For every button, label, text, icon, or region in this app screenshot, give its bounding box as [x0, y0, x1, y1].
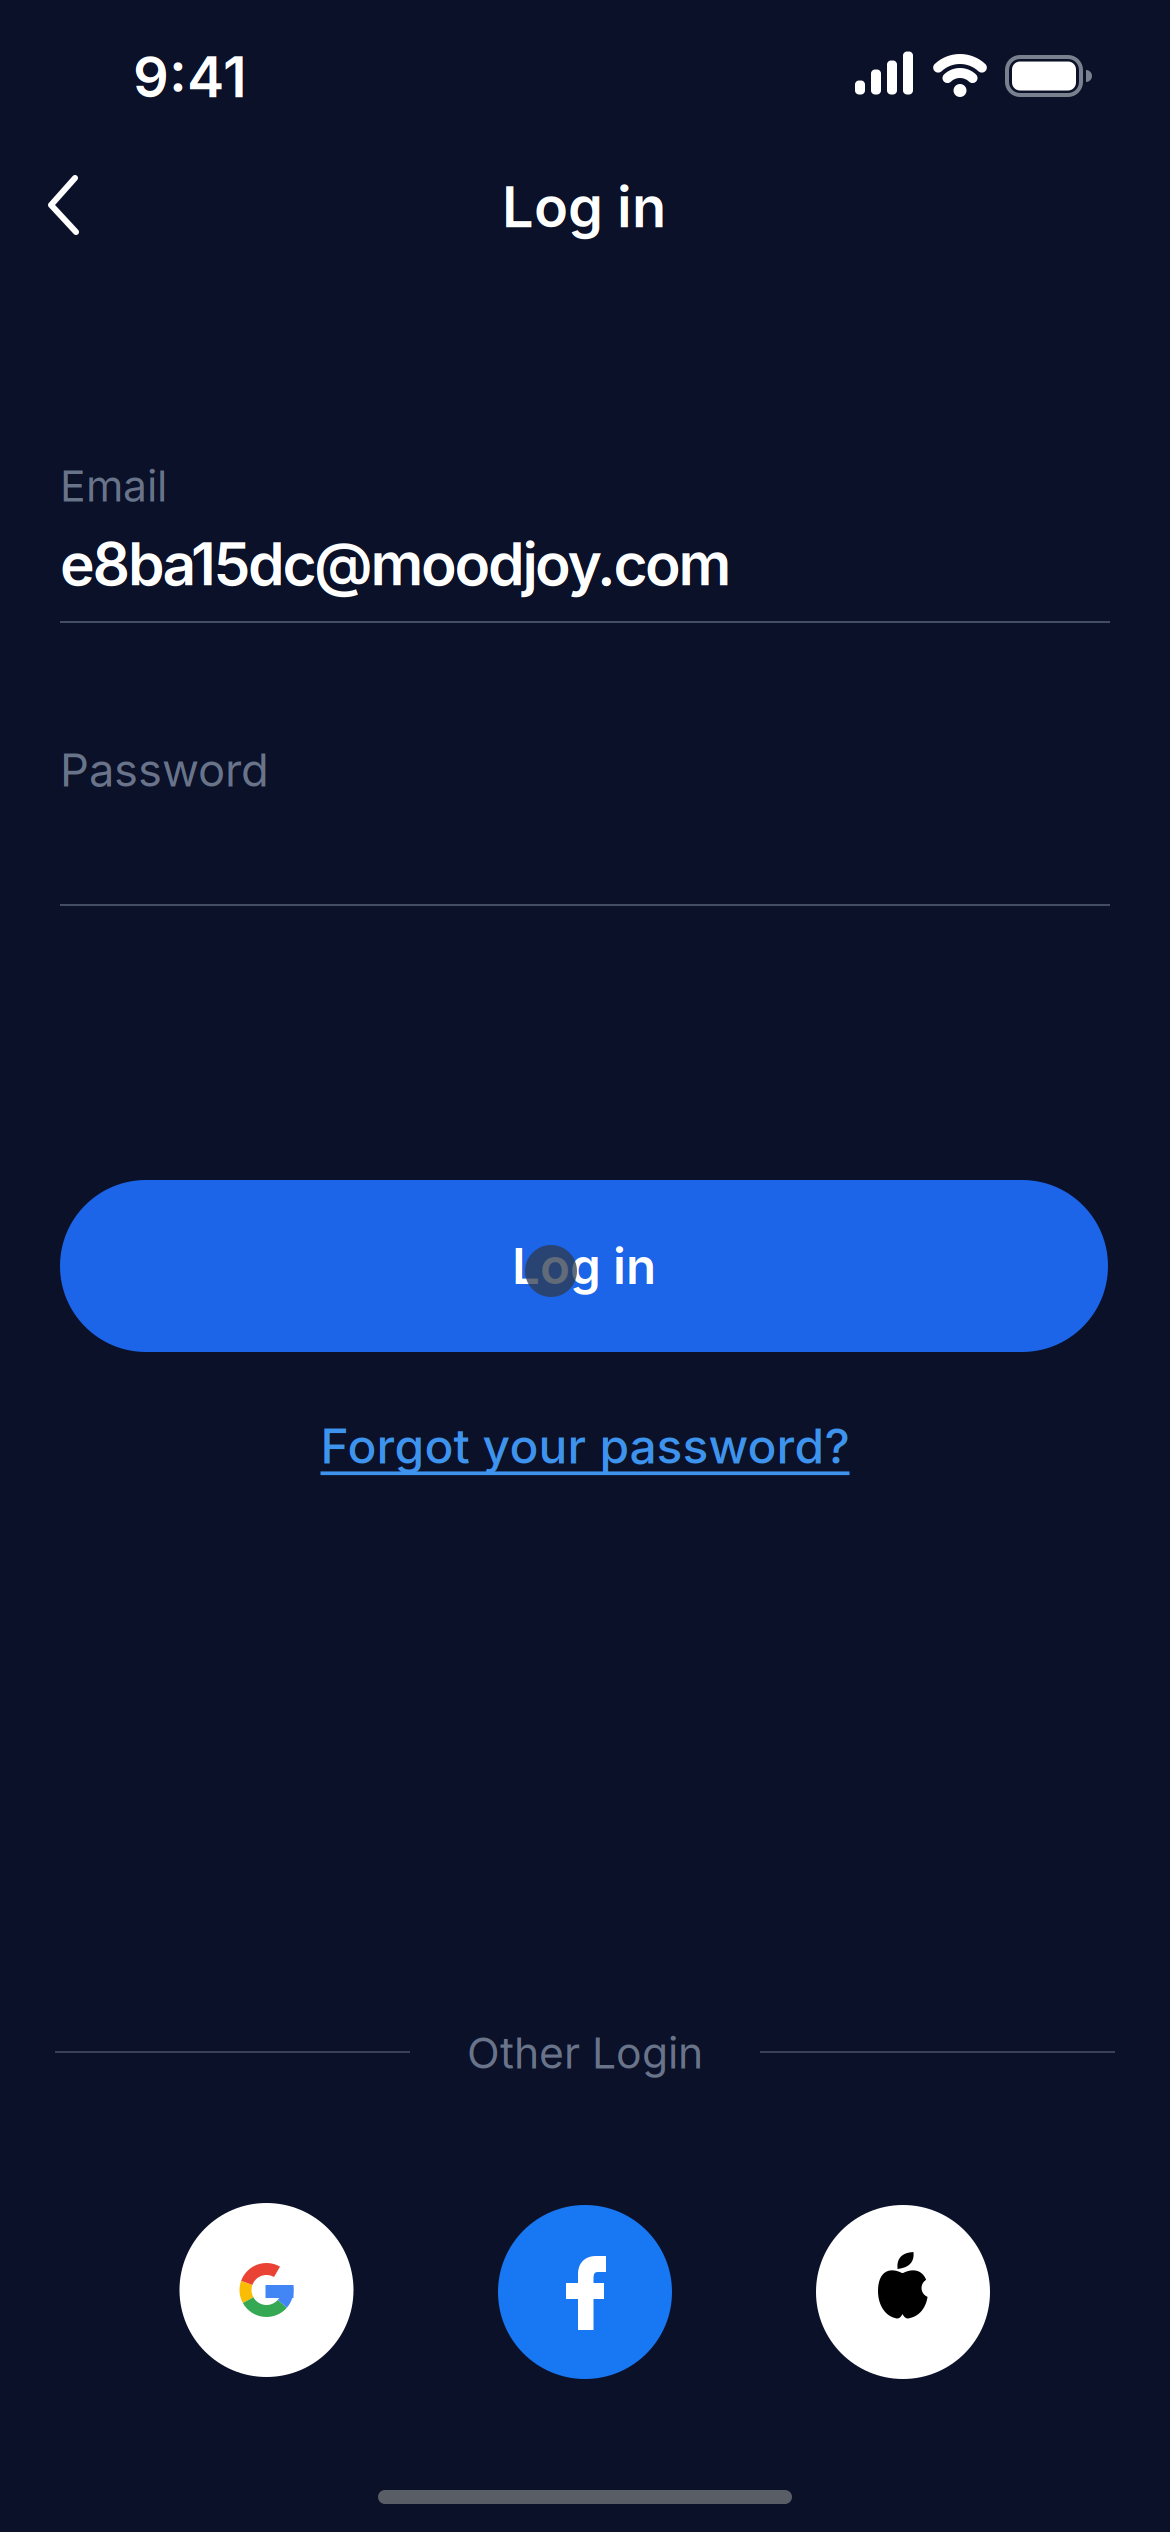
staticText: 9:41: [133, 44, 247, 110]
button[interactable]: Email: [60, 455, 1110, 625]
staticText: Password: [60, 743, 269, 797]
button[interactable]: Forgot your password?: [320, 1418, 849, 1474]
staticText: Log in: [512, 1237, 656, 1295]
staticText: Other Login: [467, 2028, 703, 2078]
button[interactable]: Log in with Apple: [816, 2205, 990, 2379]
button[interactable]: Back: [18, 160, 108, 250]
button[interactable]: Password: [60, 738, 1110, 908]
button[interactable]: Log in with Facebook: [498, 2205, 672, 2379]
staticText: e8ba15dc@moodjoy.com: [60, 529, 731, 599]
staticText: Forgot your password?: [320, 1418, 849, 1474]
staticText: Log in: [502, 174, 666, 240]
button[interactable]: Log in: [60, 1180, 1108, 1352]
staticText: Email: [60, 461, 167, 511]
button[interactable]: Log in with Google: [179, 2203, 353, 2377]
